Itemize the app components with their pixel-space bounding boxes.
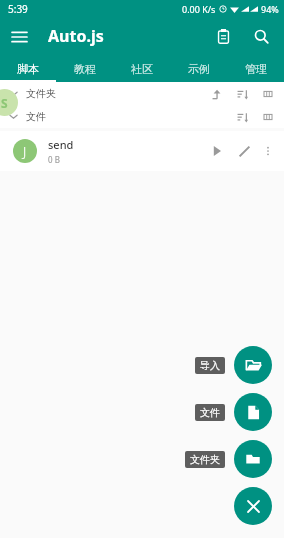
staticText: 脚本 — [17, 62, 39, 76]
button[interactable]: 文件 — [195, 404, 225, 421]
button[interactable]: Sort — [231, 83, 253, 105]
staticText: 教程 — [74, 62, 96, 76]
staticText: 5:39 — [8, 2, 28, 16]
staticText: 管理 — [245, 62, 267, 76]
staticText: 0.00 K/s — [182, 3, 216, 15]
staticText: 文件 — [26, 110, 46, 123]
staticText: 示例 — [188, 62, 210, 76]
button[interactable]: Floating assistant — [0, 89, 18, 116]
button[interactable]: 导入 — [195, 357, 225, 374]
button[interactable]: Search — [242, 17, 280, 55]
button[interactable]: Go up — [205, 83, 227, 105]
button[interactable]: J — [0, 131, 284, 171]
button[interactable]: 脚本 — [0, 55, 56, 82]
staticText: 文件夹 — [26, 87, 56, 100]
staticText: 0 B — [48, 154, 60, 165]
button[interactable]: More options — [257, 140, 279, 162]
staticText: send — [48, 137, 74, 152]
button[interactable]: Close menu — [234, 487, 272, 525]
button[interactable]: View mode — [257, 83, 279, 105]
button[interactable]: 示例 — [170, 55, 227, 82]
staticText: 文件夹 — [190, 453, 220, 466]
button[interactable]: Edit script — [232, 139, 256, 163]
button[interactable]: Run script — [205, 139, 229, 163]
button[interactable]: Sort — [231, 106, 253, 128]
button[interactable]: 社区 — [113, 55, 170, 82]
staticText: J — [23, 142, 27, 160]
staticText: 导入 — [200, 359, 220, 372]
staticText: S — [1, 95, 8, 111]
button[interactable]: 文件 — [0, 105, 284, 128]
button[interactable]: Open navigation drawer — [0, 17, 38, 55]
button[interactable]: 管理 — [227, 55, 284, 82]
button[interactable]: New file — [234, 393, 272, 431]
button[interactable]: View mode — [257, 106, 279, 128]
button[interactable]: 文件夹 — [185, 451, 225, 468]
staticText: Auto.js — [48, 25, 104, 47]
staticText: 文件 — [200, 406, 220, 419]
button[interactable]: Import file — [234, 346, 272, 384]
button[interactable]: New folder — [234, 440, 272, 478]
button[interactable]: 教程 — [56, 55, 113, 82]
staticText: 社区 — [131, 62, 153, 76]
button[interactable]: 文件夹 — [0, 82, 284, 105]
button[interactable]: Logs — [204, 17, 242, 55]
staticText: 94% — [261, 3, 279, 15]
